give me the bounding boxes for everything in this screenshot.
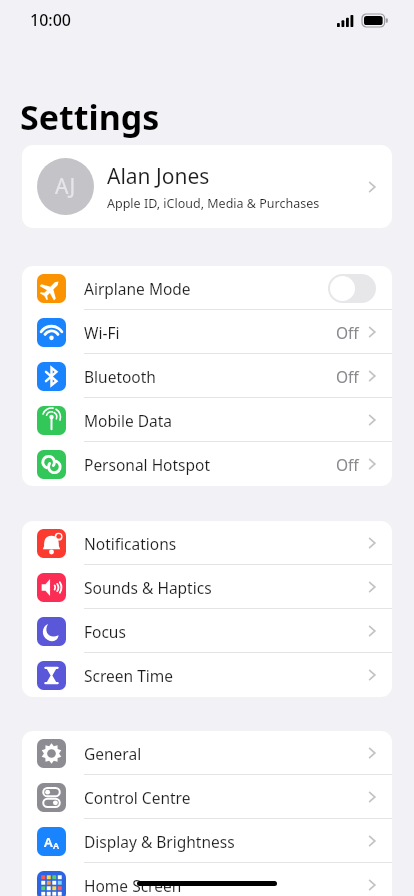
staticText: Mobile Data: [84, 410, 173, 431]
staticText: A: [44, 833, 53, 851]
staticText: Apple ID, iCloud, Media & Purchases: [107, 195, 320, 212]
staticText: Bluetooth: [84, 366, 156, 387]
button[interactable]: Control Centre: [22, 775, 392, 819]
button[interactable]: Bluetooth: [22, 354, 392, 398]
button[interactable]: Home Screen: [22, 863, 392, 896]
button[interactable]: Focus: [22, 609, 392, 653]
staticText: AJ: [55, 172, 76, 201]
staticText: Off: [336, 454, 359, 475]
staticText: Notifications: [84, 533, 177, 554]
button[interactable]: AJ: [22, 145, 392, 228]
staticText: Home Screen: [84, 875, 182, 896]
staticText: Off: [336, 366, 359, 387]
button[interactable]: Personal Hotspot: [22, 442, 392, 486]
staticText: Personal Hotspot: [84, 454, 211, 475]
staticText: Display & Brightness: [84, 831, 235, 852]
button[interactable]: A: [22, 819, 392, 863]
staticText: 10:00: [30, 9, 71, 31]
button[interactable]: Sounds & Haptics: [22, 565, 392, 609]
button[interactable]: Airplane Mode toggle, off: [328, 274, 376, 303]
staticText: Settings: [20, 94, 160, 140]
staticText: General: [84, 743, 142, 764]
staticText: Alan Jones: [107, 162, 210, 191]
staticText: Airplane Mode: [84, 278, 191, 299]
button[interactable]: Airplane Mode: [22, 266, 392, 310]
staticText: Control Centre: [84, 787, 191, 808]
staticText: Off: [336, 322, 359, 343]
staticText: Sounds & Haptics: [84, 577, 212, 598]
staticText: Focus: [84, 621, 126, 642]
staticText: Wi-Fi: [84, 322, 120, 343]
button[interactable]: Wi-Fi: [22, 310, 392, 354]
button[interactable]: General: [22, 731, 392, 775]
staticText: Screen Time: [84, 665, 173, 686]
button[interactable]: Mobile Data: [22, 398, 392, 442]
button[interactable]: Notifications: [22, 521, 392, 565]
button[interactable]: Screen Time: [22, 653, 392, 697]
staticText: A: [53, 839, 60, 851]
